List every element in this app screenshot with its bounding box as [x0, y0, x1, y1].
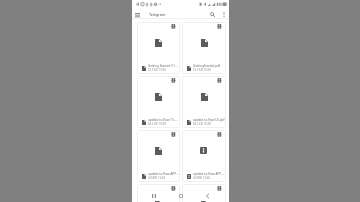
button[interactable]: Home	[175, 190, 186, 201]
staticText: 21.5 KB 15:05	[148, 68, 166, 72]
staticText: GettingStarted.pdf	[193, 64, 221, 68]
staticText: update-to-flow-APP-Thin…	[193, 172, 225, 176]
button[interactable]: Search	[208, 10, 217, 19]
staticText: update-to-flow-APP-Thin…	[148, 172, 179, 176]
button[interactable]: File options	[170, 77, 177, 84]
button[interactable]: File options	[170, 131, 177, 138]
button[interactable]: File options	[216, 23, 223, 30]
staticText: 21.5 KB 15:05	[193, 68, 211, 72]
button[interactable]: File options	[216, 131, 223, 138]
button[interactable]: File options	[182, 130, 226, 182]
button[interactable]: File options	[170, 185, 177, 192]
button[interactable]: Open navigation drawer	[133, 10, 142, 19]
button[interactable]: More options	[219, 10, 228, 19]
staticText: update-to-flow (1).pdf	[148, 118, 179, 122]
button[interactable]: Back	[202, 190, 213, 201]
staticText: 4.9 MB 13:48	[148, 176, 165, 180]
button[interactable]: File options	[137, 22, 180, 74]
button[interactable]: File options	[216, 77, 223, 84]
staticText: Getting Started (1).pdf	[148, 64, 179, 68]
button[interactable]: File options	[182, 184, 226, 202]
staticText: 4.9 MB 13:48	[193, 176, 210, 180]
staticText: 66.2 KB 10:39	[148, 122, 166, 126]
staticText: update-to-flow (2).pdf	[193, 118, 225, 122]
button[interactable]: File options	[170, 23, 177, 30]
staticText: Telegram	[149, 12, 166, 17]
button[interactable]: File options	[137, 184, 180, 202]
button[interactable]: File options	[182, 22, 226, 74]
button[interactable]: File options	[216, 185, 223, 192]
button[interactable]: File options	[182, 76, 226, 128]
button[interactable]: File options	[137, 76, 180, 128]
staticText: 66.2 KB 10:39	[193, 122, 211, 126]
button[interactable]: File options	[137, 130, 180, 182]
button[interactable]: Recent apps	[148, 190, 159, 201]
